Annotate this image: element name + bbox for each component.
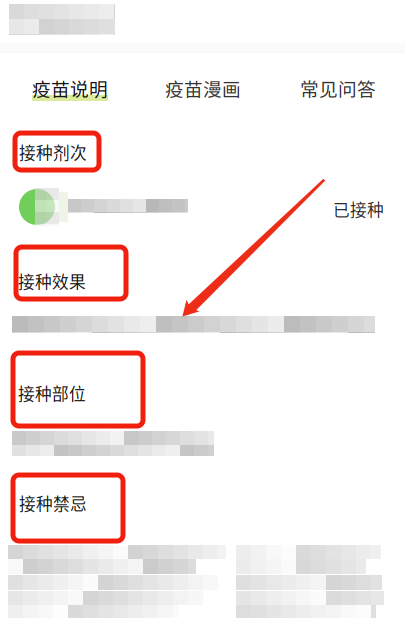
- button[interactable]: 疫苗说明: [26, 66, 114, 110]
- staticText: 接种效果: [18, 269, 86, 293]
- staticText: 常见问答: [300, 74, 376, 101]
- button[interactable]: 疫苗漫画: [159, 66, 247, 110]
- staticText: 已接种: [333, 197, 384, 221]
- staticText: 疫苗漫画: [165, 74, 241, 101]
- staticText: 接种禁忌: [19, 491, 87, 515]
- staticText: 疫苗说明: [32, 74, 108, 101]
- staticText: 接种剂次: [19, 140, 87, 164]
- button[interactable]: 常见问答: [294, 66, 382, 110]
- staticText: 接种部位: [18, 381, 86, 405]
